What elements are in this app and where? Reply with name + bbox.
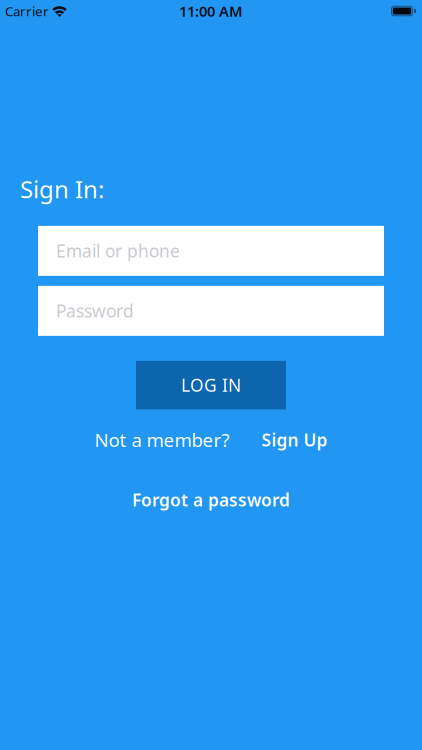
staticText: Forgot a password xyxy=(132,488,290,511)
staticText: Carrier xyxy=(5,2,49,20)
staticText: Sign Up xyxy=(261,428,327,451)
staticText: Password xyxy=(56,299,134,322)
button[interactable]: Password xyxy=(38,286,384,336)
button[interactable]: Forgot a password xyxy=(132,488,290,511)
button[interactable]: LOG IN xyxy=(136,361,286,409)
staticText: LOG IN xyxy=(181,374,241,397)
staticText: Email or phone xyxy=(56,239,180,262)
staticText: Sign In: xyxy=(20,173,104,205)
staticText: Not a member? xyxy=(94,427,229,452)
staticText: 11:00 AM xyxy=(179,1,243,21)
button[interactable]: Sign Up xyxy=(261,428,327,451)
button[interactable]: Email or phone xyxy=(38,226,384,276)
